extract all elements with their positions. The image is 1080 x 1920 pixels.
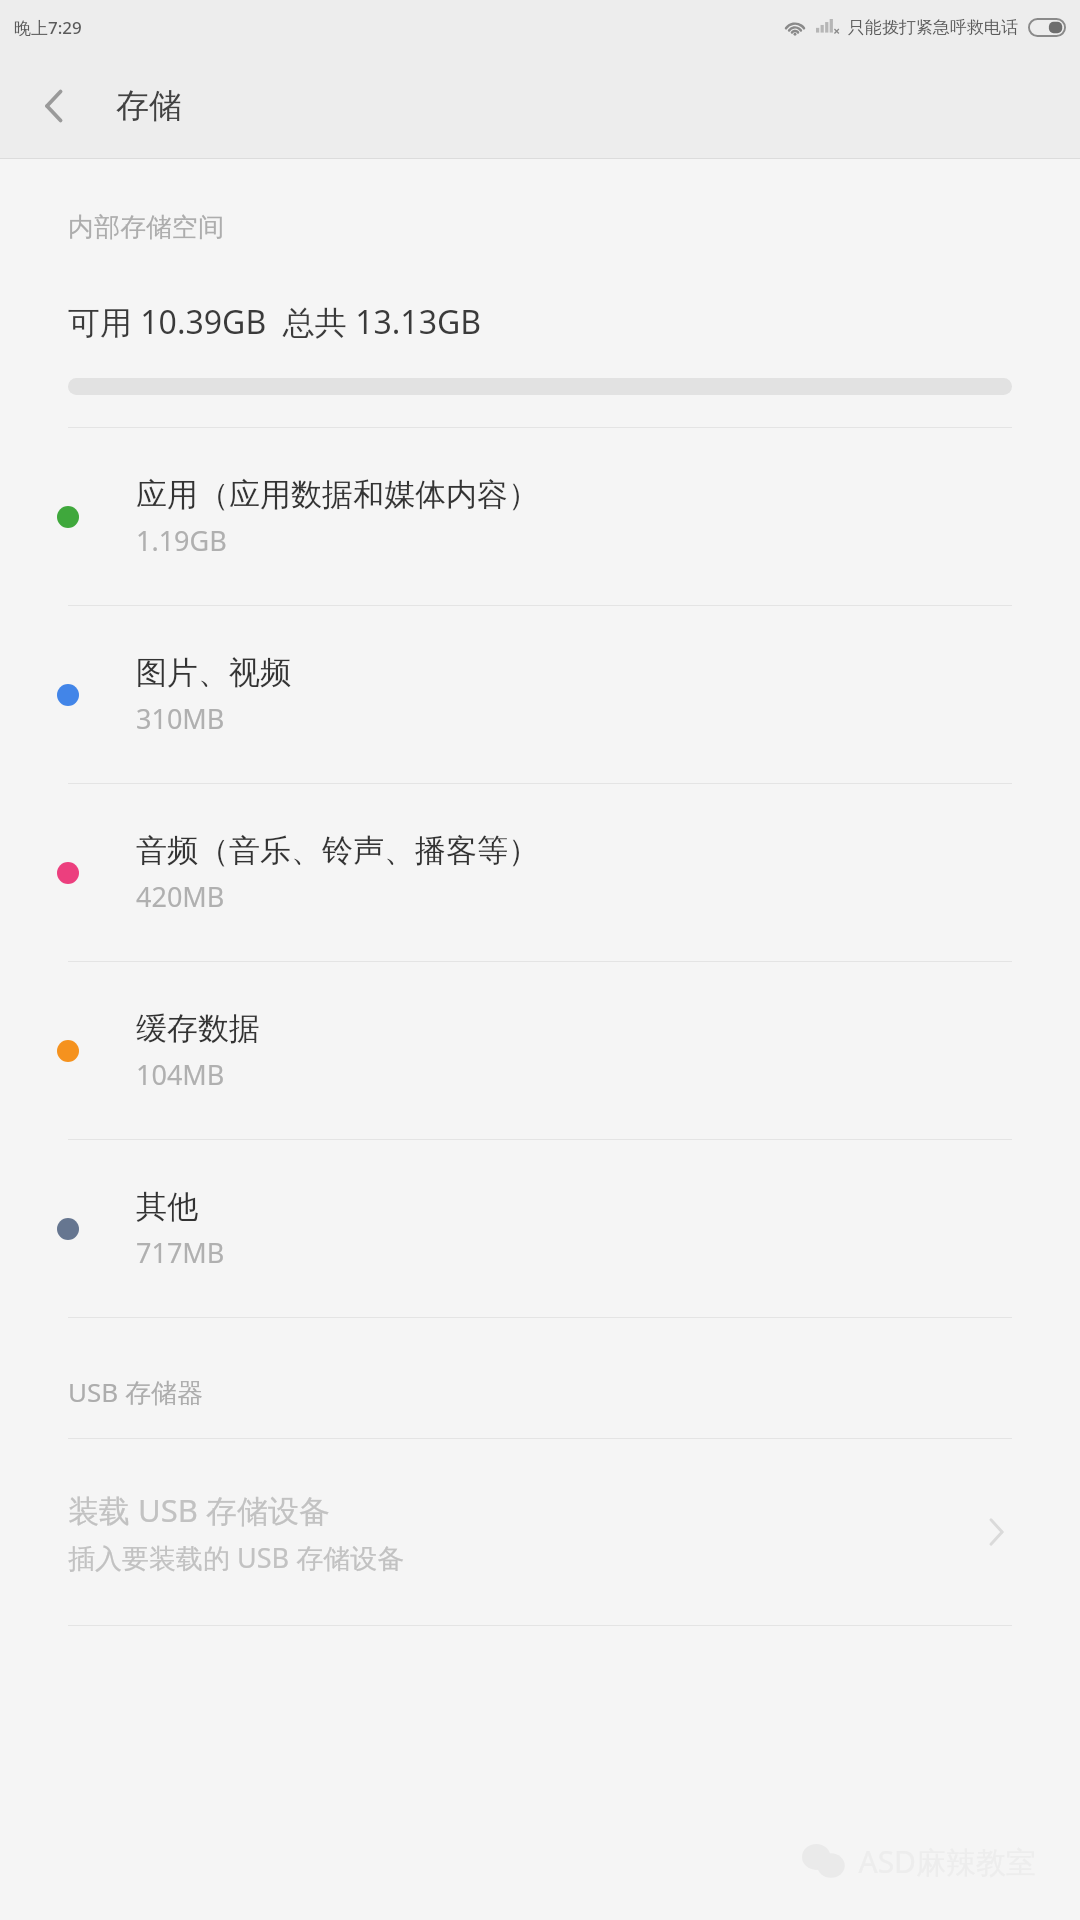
staticText: 晚上7:29 <box>14 16 82 39</box>
staticText: 存储 <box>116 85 182 127</box>
staticText: 717MB <box>136 1234 225 1271</box>
staticText: 内部存储空间 <box>68 211 224 244</box>
staticText: ASD麻辣教室 <box>858 1841 1036 1882</box>
staticText: USB 存储器 <box>68 1374 203 1410</box>
staticText: 可用 10.39GB 总共 13.13GB <box>68 300 482 344</box>
button[interactable]: 应用（应用数据和媒体内容） <box>0 428 1080 605</box>
staticText: 插入要装载的 USB 存储设备 <box>68 1539 405 1576</box>
staticText: 应用（应用数据和媒体内容） <box>136 475 539 514</box>
staticText: 420MB <box>136 878 225 915</box>
staticText: 缓存数据 <box>136 1009 260 1048</box>
staticText: 104MB <box>136 1056 225 1093</box>
staticText: 310MB <box>136 700 225 737</box>
button[interactable]: 其他 <box>0 1140 1080 1317</box>
button[interactable]: Back <box>22 74 86 138</box>
staticText: 装载 USB 存储设备 <box>68 1489 330 1531</box>
staticText: 音频（音乐、铃声、播客等） <box>136 831 539 870</box>
button[interactable]: 图片、视频 <box>0 606 1080 783</box>
staticText: 1.19GB <box>136 522 227 559</box>
button[interactable]: 装载 USB 存储设备 <box>0 1439 1080 1625</box>
button[interactable]: 音频（音乐、铃声、播客等） <box>0 784 1080 961</box>
button[interactable]: 缓存数据 <box>0 962 1080 1139</box>
staticText: 其他 <box>136 1187 198 1226</box>
staticText: 只能拨打紧急呼救电话 <box>848 17 1018 38</box>
staticText: 图片、视频 <box>136 653 291 692</box>
